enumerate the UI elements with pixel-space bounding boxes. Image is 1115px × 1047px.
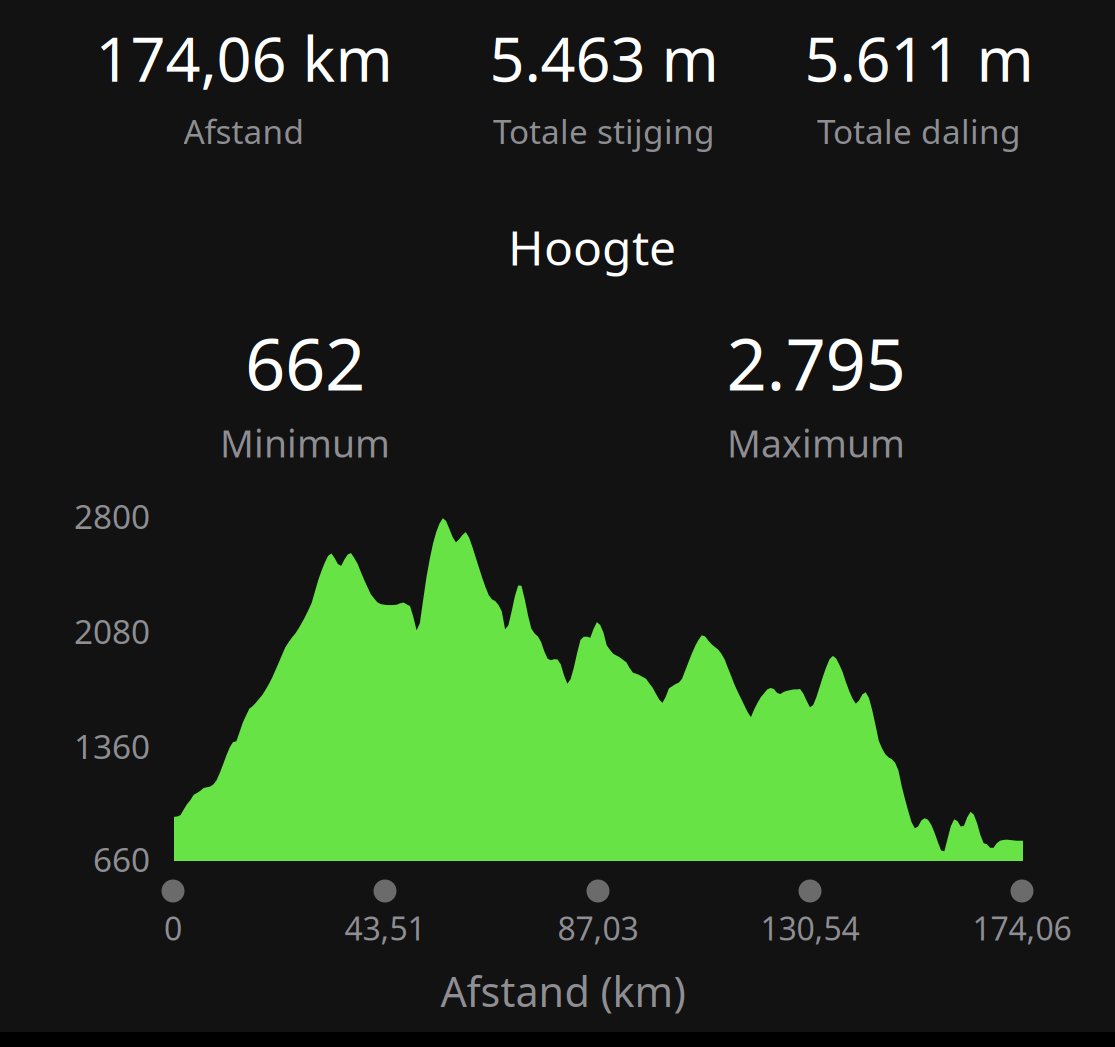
staticText: Afstand (km): [440, 964, 685, 1018]
staticText: 43,51: [344, 907, 425, 949]
staticText: 130,54: [760, 907, 859, 949]
staticText: 662: [245, 316, 365, 410]
staticText: 174,06: [972, 907, 1071, 949]
staticText: Minimum: [220, 418, 390, 468]
staticText: 2800: [74, 494, 150, 538]
staticText: 5.611 m: [804, 17, 1033, 99]
staticText: Maximum: [727, 418, 905, 468]
staticText: 5.463 m: [489, 17, 718, 99]
staticText: 660: [93, 837, 150, 881]
staticText: 174,06 km: [95, 17, 392, 99]
staticText: 0: [164, 907, 182, 949]
staticText: 2080: [74, 609, 150, 653]
staticText: Hoogte: [508, 215, 676, 279]
staticText: Totale daling: [817, 109, 1021, 153]
staticText: Totale stijging: [493, 109, 715, 153]
staticText: 1360: [74, 724, 150, 768]
staticText: 2.795: [726, 316, 905, 410]
staticText: 87,03: [557, 907, 638, 949]
staticText: Afstand: [183, 109, 304, 153]
